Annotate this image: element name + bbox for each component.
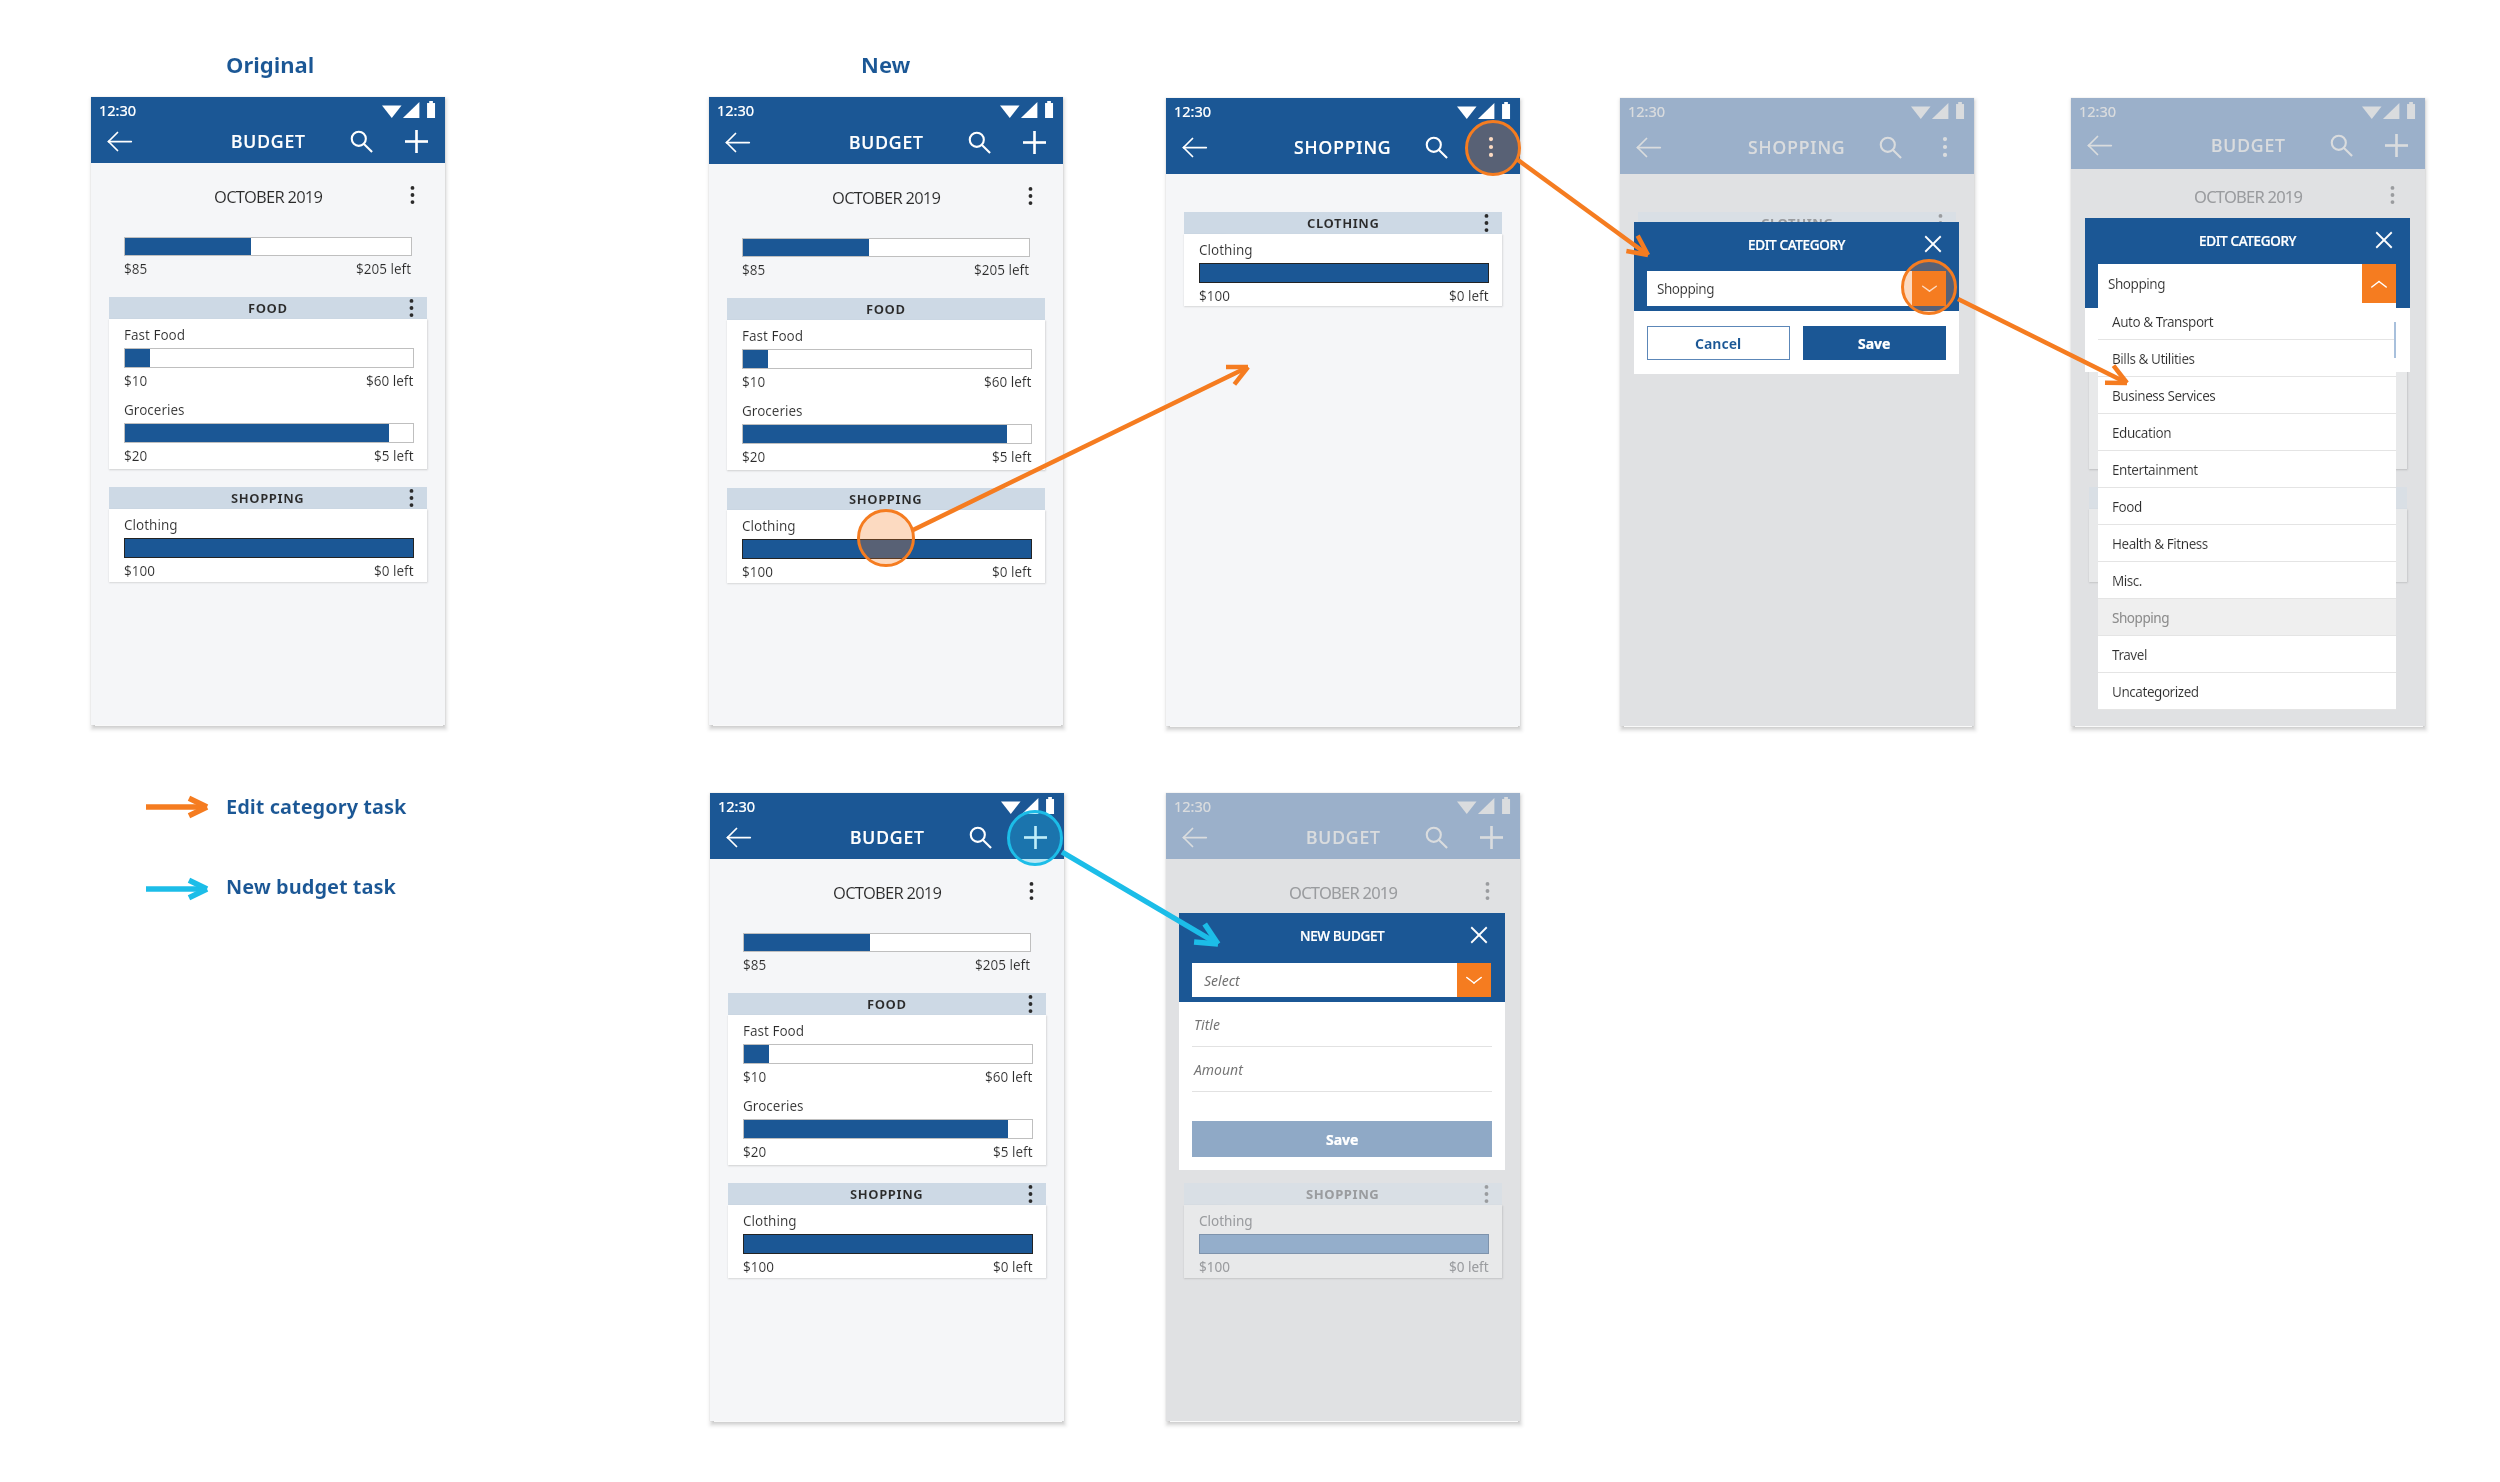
staticText: OCTOBER 2019: [2194, 185, 2303, 205]
button[interactable]: SHOPPING: [2089, 487, 2407, 509]
staticText: EDIT CATEGORY: [1748, 236, 1846, 254]
button[interactable]: Auto & Transport: [2098, 303, 2396, 340]
staticText: $20: [742, 448, 766, 466]
button[interactable]: Cancel: [1647, 326, 1790, 360]
button[interactable]: Back: [2083, 129, 2115, 161]
staticText: $85: [742, 261, 766, 279]
button[interactable]: Save: [1803, 326, 1946, 360]
button[interactable]: Search: [1418, 129, 1454, 165]
button[interactable]: Month options: [1025, 881, 1038, 901]
button[interactable]: SHOPPING: [1184, 1183, 1502, 1205]
button[interactable]: Education: [2098, 414, 2396, 451]
button[interactable]: Open category list: [1457, 963, 1491, 997]
button[interactable]: Shopping: [2098, 264, 2396, 303]
button[interactable]: CLOTHING: [1184, 212, 1502, 234]
staticText: 12:30: [99, 100, 137, 120]
staticText: $20: [124, 447, 148, 465]
button[interactable]: CLOTHING: [1638, 212, 1956, 234]
button[interactable]: SHOPPING: [109, 487, 427, 509]
button[interactable]: Search: [1872, 129, 1908, 165]
button[interactable]: Shopping: [2098, 599, 2396, 636]
staticText: $0 left: [374, 562, 414, 580]
button[interactable]: More options: [1473, 129, 1509, 165]
staticText: Fast Food: [743, 1022, 805, 1040]
staticText: Entertainment: [2112, 461, 2198, 479]
button[interactable]: Search: [961, 124, 997, 160]
staticText: Clothing: [742, 517, 796, 535]
button[interactable]: Misc.: [2098, 562, 2396, 599]
button[interactable]: Search: [2323, 127, 2359, 163]
button[interactable]: Close dialog: [1920, 231, 1946, 257]
button[interactable]: Back: [1632, 131, 1664, 163]
button[interactable]: Add budget: [1016, 124, 1052, 160]
button[interactable]: SHOPPING: [728, 1183, 1046, 1205]
button[interactable]: FOOD: [727, 298, 1045, 320]
button[interactable]: Health & Fitness: [2098, 525, 2396, 562]
button[interactable]: Business Services: [2098, 377, 2396, 414]
button[interactable]: FOOD: [2089, 297, 2407, 319]
staticText: 12:30: [1174, 796, 1212, 816]
button[interactable]: Add budget: [1473, 819, 1509, 855]
button[interactable]: Add budget: [398, 123, 434, 159]
staticText: Groceries: [2104, 401, 2165, 419]
button[interactable]: Month options: [1481, 881, 1494, 901]
button[interactable]: Close dialog: [2371, 227, 2397, 253]
button[interactable]: FOOD: [728, 993, 1046, 1015]
button[interactable]: Search: [343, 123, 379, 159]
staticText: $20: [743, 1143, 767, 1161]
staticText: $10: [742, 373, 766, 391]
button[interactable]: Month options: [1024, 186, 1037, 206]
staticText: $85: [124, 260, 148, 278]
staticText: $100: [124, 562, 155, 580]
button[interactable]: Travel: [2098, 636, 2396, 673]
button[interactable]: Open category list: [1912, 271, 1946, 306]
button[interactable]: Back: [1178, 131, 1210, 163]
button[interactable]: Add budget: [2378, 127, 2414, 163]
staticText: Travel: [2112, 646, 2147, 664]
staticText: $60 left: [366, 372, 414, 390]
button[interactable]: Close category list: [2362, 264, 2396, 303]
button[interactable]: Back: [1178, 821, 1210, 853]
button[interactable]: Search: [1418, 819, 1454, 855]
staticText: $205 left: [975, 956, 1031, 974]
button[interactable]: Save: [1192, 1121, 1492, 1157]
other: Category options: [1024, 1183, 1037, 1205]
staticText: Education: [2112, 424, 2172, 442]
button[interactable]: Uncategorized: [2098, 673, 2396, 710]
staticText: FOOD: [866, 300, 906, 318]
staticText: $5 left: [993, 1143, 1033, 1161]
button[interactable]: FOOD: [109, 297, 427, 319]
button[interactable]: Back: [722, 821, 754, 853]
staticText: Shopping: [2108, 275, 2166, 293]
button[interactable]: Back: [721, 126, 753, 158]
button[interactable]: Title: [1179, 1002, 1505, 1047]
button[interactable]: Amount: [1179, 1047, 1505, 1092]
button[interactable]: Bills & Utilities: [2098, 340, 2396, 377]
staticText: 12:30: [1174, 101, 1212, 121]
button[interactable]: Entertainment: [2098, 451, 2396, 488]
staticText: Save: [1326, 1130, 1359, 1149]
button[interactable]: SHOPPING: [727, 488, 1045, 510]
button[interactable]: Month options: [2386, 185, 2399, 205]
button[interactable]: More options: [1927, 129, 1963, 165]
staticText: CLOTHING: [1307, 214, 1380, 232]
staticText: Fast Food: [124, 326, 186, 344]
other: Category options: [1480, 993, 1493, 1015]
button[interactable]: FOOD: [1184, 993, 1502, 1015]
button[interactable]: Select: [1192, 963, 1491, 997]
staticText: 12:30: [718, 796, 756, 816]
staticText: SHOPPING: [849, 490, 923, 508]
staticText: SHOPPING: [231, 489, 305, 507]
button[interactable]: Food: [2098, 488, 2396, 525]
staticText: $100: [2104, 562, 2135, 580]
button[interactable]: Back: [103, 125, 135, 157]
staticText: $60 left: [984, 373, 1032, 391]
button[interactable]: Add budget: [1017, 819, 1053, 855]
staticText: Save: [1858, 334, 1891, 353]
staticText: $85: [1199, 956, 1223, 974]
button[interactable]: Close dialog: [1466, 922, 1492, 948]
button[interactable]: Month options: [406, 185, 419, 205]
staticText: EDIT CATEGORY: [2199, 232, 2297, 250]
button[interactable]: Search: [962, 819, 998, 855]
button[interactable]: Shopping: [1647, 271, 1946, 306]
